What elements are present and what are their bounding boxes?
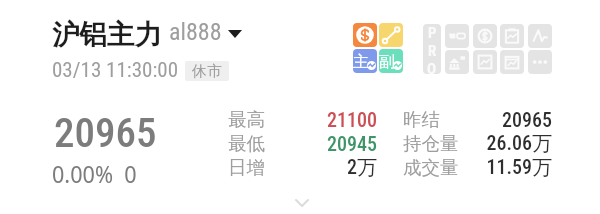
button[interactable]: 日增 (228, 155, 377, 179)
button[interactable]: Report (500, 24, 524, 48)
staticText: 2万 (265, 155, 377, 179)
staticText: O (427, 60, 437, 74)
staticText: 20965 (440, 108, 552, 131)
button[interactable]: Trend (473, 50, 497, 74)
staticText: 日增 (228, 156, 265, 179)
button[interactable]: Funds (473, 24, 497, 48)
button[interactable]: 昨结 (403, 107, 552, 131)
staticText: 20945 (265, 132, 377, 155)
button[interactable]: 最低 (228, 131, 377, 155)
staticText: 副 (379, 52, 395, 72)
staticText: R (428, 42, 437, 60)
button[interactable]: Calendar (500, 50, 524, 74)
staticText: 沪铝主力 (52, 18, 162, 53)
button[interactable]: 最高 (228, 107, 377, 131)
staticText: 昨结 (403, 108, 440, 131)
button[interactable]: Layout (445, 24, 469, 48)
staticText: P (428, 24, 437, 42)
button[interactable]: 成交量 (403, 155, 552, 179)
staticText: 0.00% 0 (52, 158, 137, 189)
staticText: 主 (353, 52, 369, 72)
button[interactable]: Capital flow (353, 23, 377, 47)
button[interactable]: Sub chart (379, 49, 403, 73)
staticText: 20965 (54, 109, 157, 157)
staticText: 休市 (192, 62, 222, 81)
staticText: 21100 (265, 108, 377, 131)
staticText: 最低 (228, 132, 265, 155)
staticText: 11.59万 (459, 155, 552, 179)
button[interactable]: Analysis (445, 50, 469, 74)
button[interactable]: More (528, 50, 552, 74)
button[interactable]: Main chart (353, 49, 377, 73)
staticText: 26.06万 (459, 131, 552, 155)
staticText: 成交量 (403, 156, 459, 179)
staticText: al888 (169, 18, 222, 46)
staticText: 持仓量 (403, 132, 459, 155)
staticText: 最高 (228, 108, 265, 131)
staticText: 03/13 11:30:00 (52, 58, 179, 83)
button[interactable]: PRO (423, 24, 441, 74)
button[interactable]: Indicator (528, 24, 552, 48)
button[interactable]: Trend line (379, 23, 403, 47)
button[interactable]: Expand (276, 192, 328, 214)
button[interactable]: 沪铝主力 (52, 18, 248, 53)
button[interactable]: 持仓量 (403, 131, 552, 155)
